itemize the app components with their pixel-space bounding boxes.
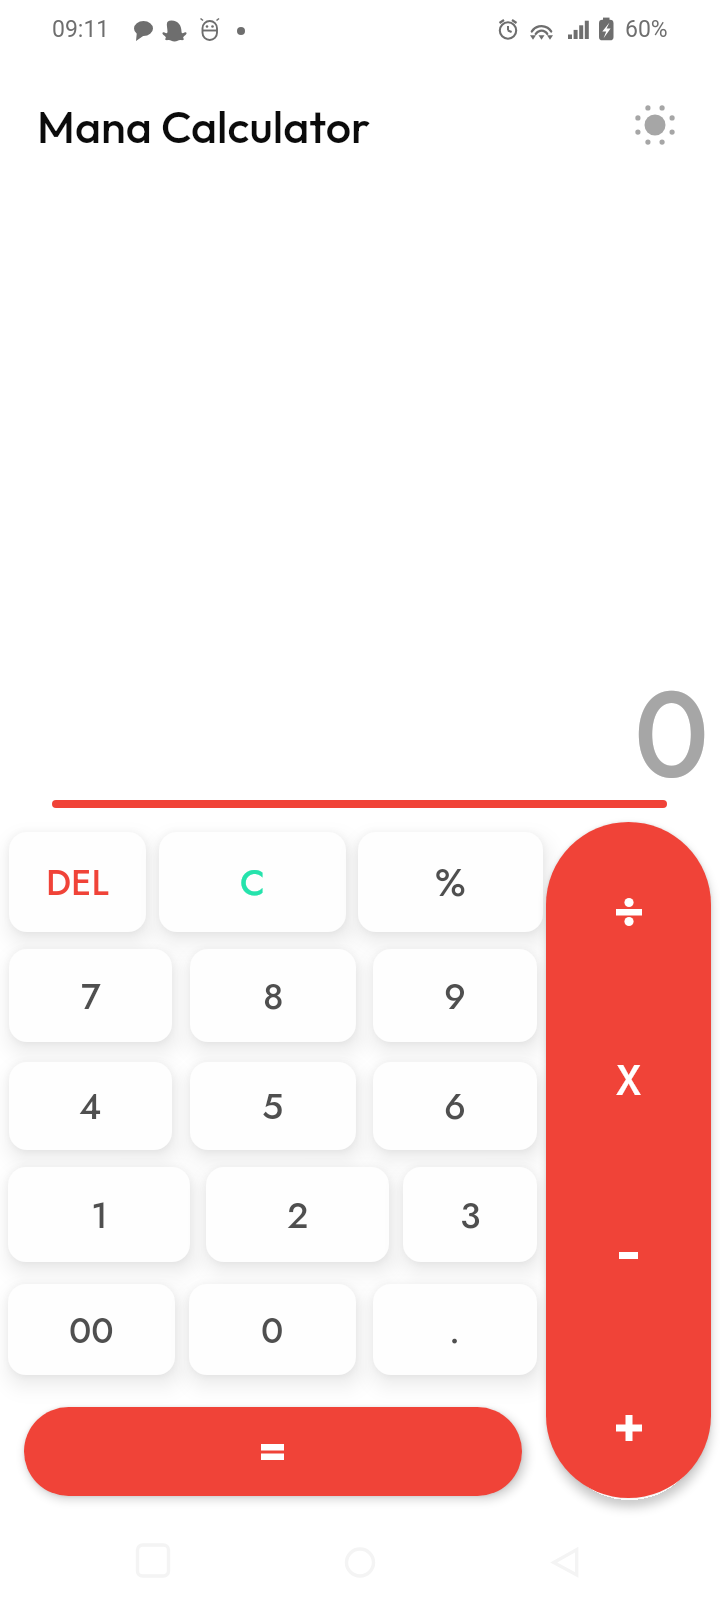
button[interactable] xyxy=(24,1407,522,1496)
staticText: DEL xyxy=(46,856,109,908)
staticText: 7 xyxy=(81,970,101,1022)
button[interactable]: 5 xyxy=(190,1062,356,1150)
staticText: 6 xyxy=(444,1080,466,1132)
staticText: 60% xyxy=(625,16,668,43)
staticText: . xyxy=(449,1304,461,1356)
staticText: % xyxy=(435,855,466,910)
button[interactable]: Subtract xyxy=(546,1213,711,1297)
button[interactable]: . xyxy=(373,1284,537,1375)
staticText: 4 xyxy=(79,1080,102,1132)
staticText: 3 xyxy=(460,1189,481,1241)
button[interactable]: 3 xyxy=(403,1167,537,1262)
staticText: 9 xyxy=(444,970,466,1022)
button[interactable]: 0 xyxy=(189,1284,356,1375)
button[interactable]: C xyxy=(159,832,346,932)
button[interactable]: 4 xyxy=(9,1062,172,1150)
staticText: X xyxy=(616,1050,642,1111)
staticText: 0 xyxy=(261,1304,284,1356)
button[interactable]: Recent apps xyxy=(123,1533,183,1593)
button[interactable]: Divide xyxy=(546,870,711,954)
button[interactable]: Brightness xyxy=(609,79,701,171)
staticText: 2 xyxy=(287,1189,309,1241)
button[interactable]: 8 xyxy=(190,949,356,1042)
button[interactable]: 00 xyxy=(8,1284,175,1375)
staticText: 1 xyxy=(91,1189,108,1241)
staticText: 5 xyxy=(262,1080,284,1132)
button[interactable]: DEL xyxy=(9,832,146,932)
staticText: 09:11 xyxy=(52,16,110,43)
button[interactable]: 6 xyxy=(373,1062,537,1150)
staticText: 0 xyxy=(0,648,709,823)
button[interactable]: Add xyxy=(546,1386,711,1470)
button[interactable]: 2 xyxy=(206,1167,389,1262)
button[interactable]: 9 xyxy=(373,949,537,1042)
button[interactable]: 1 xyxy=(8,1167,190,1262)
staticText: 8 xyxy=(263,970,284,1022)
button[interactable]: Multiply xyxy=(546,1038,711,1122)
button[interactable]: % xyxy=(358,832,543,932)
staticText: 00 xyxy=(69,1304,114,1356)
button[interactable]: 7 xyxy=(9,949,172,1042)
staticText: Mana Calculator xyxy=(37,98,371,155)
staticText: C xyxy=(240,856,265,908)
